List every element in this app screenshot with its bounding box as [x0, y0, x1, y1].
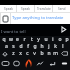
button[interactable]: Document: [1, 13, 10, 24]
button[interactable]: l: [59, 43, 66, 50]
button[interactable]: d: [17, 43, 24, 50]
staticText: j: [48, 43, 50, 50]
staticText: a: [5, 43, 8, 50]
button[interactable]: b: [38, 50, 45, 57]
button[interactable]: r: [21, 36, 28, 43]
button[interactable]: c: [24, 50, 31, 57]
button[interactable]: Emoji: [11, 57, 22, 70]
staticText: l: [62, 43, 64, 50]
button[interactable]: j: [45, 43, 52, 50]
button[interactable]: z: [10, 50, 17, 57]
button[interactable]: Send: [59, 25, 68, 34]
button[interactable]: Translate: [35, 5, 52, 12]
staticText: p: [65, 36, 69, 43]
staticText: v: [33, 50, 36, 57]
staticText: d: [19, 43, 23, 50]
button[interactable]: n: [45, 50, 52, 57]
button[interactable]: App logo: [22, 57, 34, 70]
staticText: Speak: [4, 7, 13, 11]
staticText: Translate: [37, 7, 51, 11]
staticText: z: [12, 50, 15, 57]
button[interactable]: w: [7, 36, 14, 43]
button[interactable]: v: [31, 50, 38, 57]
button[interactable]: Speak: [17, 5, 34, 12]
button[interactable]: y: [35, 36, 42, 43]
staticText: m: [53, 50, 58, 57]
button[interactable]: o: [56, 36, 63, 43]
button[interactable]: Trending: [34, 57, 46, 70]
staticText: I want to tell: [1, 29, 26, 35]
button[interactable]: k: [52, 43, 59, 50]
button[interactable]: Speak: [0, 5, 16, 12]
staticText: s: [12, 43, 15, 50]
button[interactable]: h: [38, 43, 45, 50]
button[interactable]: s: [10, 43, 17, 50]
staticText: c: [26, 50, 29, 57]
staticText: q: [2, 36, 6, 43]
button[interactable]: p: [63, 36, 70, 43]
staticText: i: [52, 36, 54, 43]
button[interactable]: m: [52, 50, 59, 57]
button[interactable]: Shift: [0, 50, 10, 57]
button[interactable]: g: [31, 43, 38, 50]
button[interactable]: e: [14, 36, 21, 43]
staticText: o: [58, 36, 62, 43]
staticText: f: [27, 43, 29, 50]
button[interactable]: f: [24, 43, 31, 50]
staticText: t: [31, 36, 33, 43]
button[interactable]: Type anything to translate: [11, 13, 70, 24]
staticText: Send: [58, 7, 66, 11]
button[interactable]: q: [0, 36, 7, 43]
staticText: g: [33, 43, 37, 50]
button[interactable]: Send: [53, 5, 70, 12]
staticText: Type anything to translate: [12, 15, 64, 21]
staticText: Speak: [21, 7, 30, 11]
button[interactable]: Keyboard: [0, 57, 11, 70]
button[interactable]: x: [17, 50, 24, 57]
button[interactable]: t: [28, 36, 35, 43]
staticText: x: [19, 50, 22, 57]
staticText: y: [37, 36, 40, 43]
button[interactable]: i: [49, 36, 56, 43]
button[interactable]: Enter: [46, 57, 58, 70]
staticText: e: [16, 36, 19, 43]
button[interactable]: Voice input: [58, 57, 70, 70]
button[interactable]: Backspace: [59, 50, 70, 57]
staticText: n: [47, 50, 51, 57]
staticText: h: [40, 43, 44, 50]
staticText: b: [40, 50, 44, 57]
button[interactable]: a: [3, 43, 10, 50]
staticText: r: [23, 36, 26, 43]
button[interactable]: u: [42, 36, 49, 43]
staticText: w: [9, 36, 13, 43]
staticText: k: [54, 43, 57, 50]
staticText: u: [44, 36, 48, 43]
